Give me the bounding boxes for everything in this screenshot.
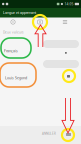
staticText: Deux valeurs xyxy=(3,30,24,34)
button[interactable]: Compare xyxy=(37,19,43,25)
button[interactable]: ANNULER xyxy=(42,131,56,136)
button[interactable]: More xyxy=(62,19,68,25)
staticText: 14:05 xyxy=(64,2,73,6)
staticText: ANNULER xyxy=(42,131,56,135)
staticText: Français xyxy=(4,49,18,53)
button[interactable]: Français xyxy=(4,48,28,54)
button[interactable]: Louis Segond xyxy=(5,75,29,81)
staticText: Louis Segond xyxy=(5,76,27,80)
staticText: Langue et apprenant xyxy=(3,10,36,15)
button[interactable]: History xyxy=(10,19,16,25)
